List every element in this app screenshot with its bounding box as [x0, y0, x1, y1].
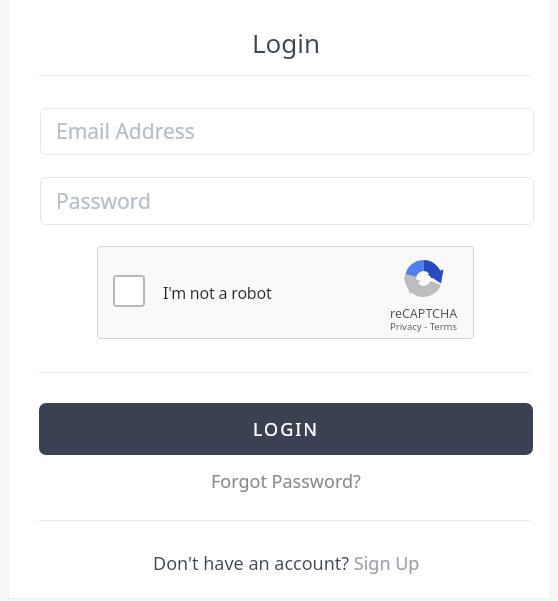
staticText: Password [56, 187, 151, 216]
staticText: I'm not a robot [163, 282, 272, 304]
staticText: Don't have an account? Sign Up [153, 551, 420, 576]
button[interactable]: Password [40, 177, 534, 225]
staticText: reCAPTCHA [390, 305, 458, 322]
button[interactable]: Forgot Password? [211, 469, 361, 494]
button[interactable]: LOGIN [39, 403, 533, 455]
staticText: Email Address [56, 117, 195, 146]
staticText: Privacy - Terms [390, 320, 458, 333]
staticText: Login [252, 25, 321, 60]
button[interactable]: Don't have an account? Sign Up [153, 551, 420, 576]
staticText: LOGIN [253, 417, 320, 442]
staticText: Forgot Password? [211, 469, 361, 494]
button[interactable]: Email Address [40, 108, 534, 155]
button[interactable] [113, 275, 145, 307]
